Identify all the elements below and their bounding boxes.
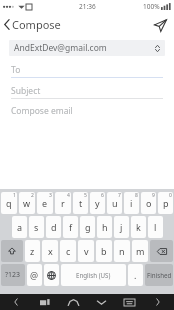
staticText: q <box>6 197 12 209</box>
staticText: ?123 <box>5 270 21 280</box>
staticText: 6 <box>101 192 104 199</box>
button[interactable]: c <box>60 240 76 262</box>
staticText: c <box>66 245 71 257</box>
staticText: Finished <box>147 271 172 279</box>
button[interactable]: h <box>97 216 112 238</box>
staticText: y <box>95 197 100 209</box>
staticText: Compose <box>12 17 61 32</box>
button[interactable]: Send <box>149 14 171 36</box>
staticText: 21:36 <box>79 2 96 11</box>
staticText: AndExtDev@gmail.com <box>14 42 107 54</box>
staticText: . <box>134 269 137 281</box>
button[interactable]: x <box>42 240 58 262</box>
button[interactable]: n <box>114 240 130 262</box>
button[interactable]: d <box>46 216 61 238</box>
staticText: 4 <box>67 192 70 199</box>
button[interactable]: u <box>107 192 122 214</box>
button[interactable]: Next <box>146 294 170 310</box>
staticText: To <box>11 64 21 76</box>
staticText: r <box>61 197 65 209</box>
staticText: k <box>136 221 141 233</box>
button[interactable]: t <box>73 192 88 214</box>
button[interactable]: Compose <box>0 14 67 35</box>
staticText: h <box>102 221 108 233</box>
staticText: b <box>101 245 107 257</box>
button[interactable]: p <box>158 192 173 214</box>
staticText: p <box>163 197 169 209</box>
button[interactable]: q <box>1 192 17 214</box>
button[interactable]: AndExtDev@gmail.com <box>9 40 165 56</box>
staticText: x <box>48 245 53 257</box>
button[interactable]: v <box>78 240 94 262</box>
button[interactable]: o <box>141 192 156 214</box>
button[interactable]: e <box>37 192 53 214</box>
button[interactable]: @ <box>27 264 42 286</box>
button[interactable]: Recents <box>33 294 57 310</box>
staticText: z <box>30 245 35 257</box>
staticText: s <box>34 221 39 233</box>
staticText: e <box>42 197 48 209</box>
staticText: 9 <box>152 192 155 199</box>
button[interactable]: r <box>55 192 71 214</box>
button[interactable]: Home <box>61 294 85 310</box>
staticText: u <box>112 197 118 209</box>
staticText: 5 <box>84 192 87 199</box>
button[interactable]: Subject <box>11 84 163 99</box>
button[interactable]: a <box>12 216 27 238</box>
staticText: 2 <box>31 192 34 199</box>
staticText: i <box>130 197 133 209</box>
staticText: a <box>17 221 23 233</box>
button[interactable]: z <box>25 240 40 262</box>
button[interactable]: Backspace <box>150 240 173 262</box>
staticText: English (US) <box>76 271 111 279</box>
button[interactable]: m <box>132 240 148 262</box>
staticText: t <box>79 197 83 209</box>
button[interactable]: ?123 <box>1 264 25 286</box>
button[interactable]: . <box>128 264 143 286</box>
button[interactable]: Keyboard <box>117 294 141 310</box>
button[interactable]: j <box>114 216 129 238</box>
staticText: 0 <box>169 192 172 199</box>
button[interactable]: s <box>29 216 44 238</box>
button[interactable]: Finished <box>145 264 173 286</box>
staticText: f <box>69 221 73 233</box>
staticText: Compose email <box>11 105 73 117</box>
button[interactable]: b <box>96 240 112 262</box>
staticText: 1 <box>13 192 16 199</box>
staticText: j <box>120 221 123 233</box>
staticText: g <box>85 221 91 233</box>
staticText: d <box>51 221 57 233</box>
staticText: m <box>136 245 145 257</box>
button[interactable]: w <box>19 192 35 214</box>
button[interactable]: f <box>63 216 78 238</box>
staticText: n <box>119 245 125 257</box>
staticText: Subject <box>11 85 41 97</box>
button[interactable]: Compose email <box>11 105 163 121</box>
staticText: 100% <box>143 2 160 11</box>
button[interactable]: g <box>80 216 95 238</box>
staticText: 7 <box>118 192 121 199</box>
button[interactable]: Language <box>44 264 59 286</box>
button[interactable]: Hide keyboard <box>89 294 113 310</box>
staticText: l <box>154 221 157 233</box>
staticText: v <box>84 245 89 257</box>
button[interactable]: y <box>90 192 105 214</box>
staticText: 8 <box>135 192 138 199</box>
staticText: 3 <box>49 192 52 199</box>
staticText: o <box>146 197 152 209</box>
button[interactable]: l <box>148 216 163 238</box>
button[interactable]: i <box>124 192 139 214</box>
staticText: @ <box>30 269 39 281</box>
staticText: w <box>23 197 31 209</box>
button[interactable]: Previous <box>4 294 28 310</box>
button[interactable]: Shift <box>1 240 23 262</box>
button[interactable]: k <box>131 216 146 238</box>
button[interactable]: To <box>11 63 163 78</box>
button[interactable]: English (US) <box>61 264 126 286</box>
